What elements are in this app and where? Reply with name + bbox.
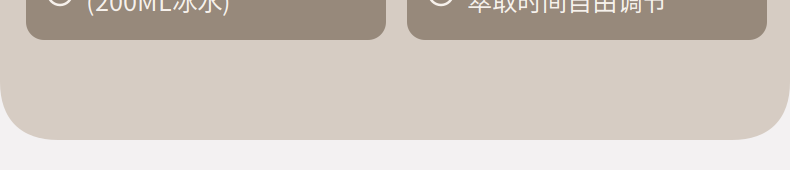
- button[interactable]: (200ML冰水): [26, 0, 386, 40]
- button[interactable]: 萃取时间自由调节: [407, 0, 767, 40]
- staticText: 萃取时间自由调节: [467, 0, 667, 18]
- staticText: (200ML冰水): [86, 0, 231, 18]
